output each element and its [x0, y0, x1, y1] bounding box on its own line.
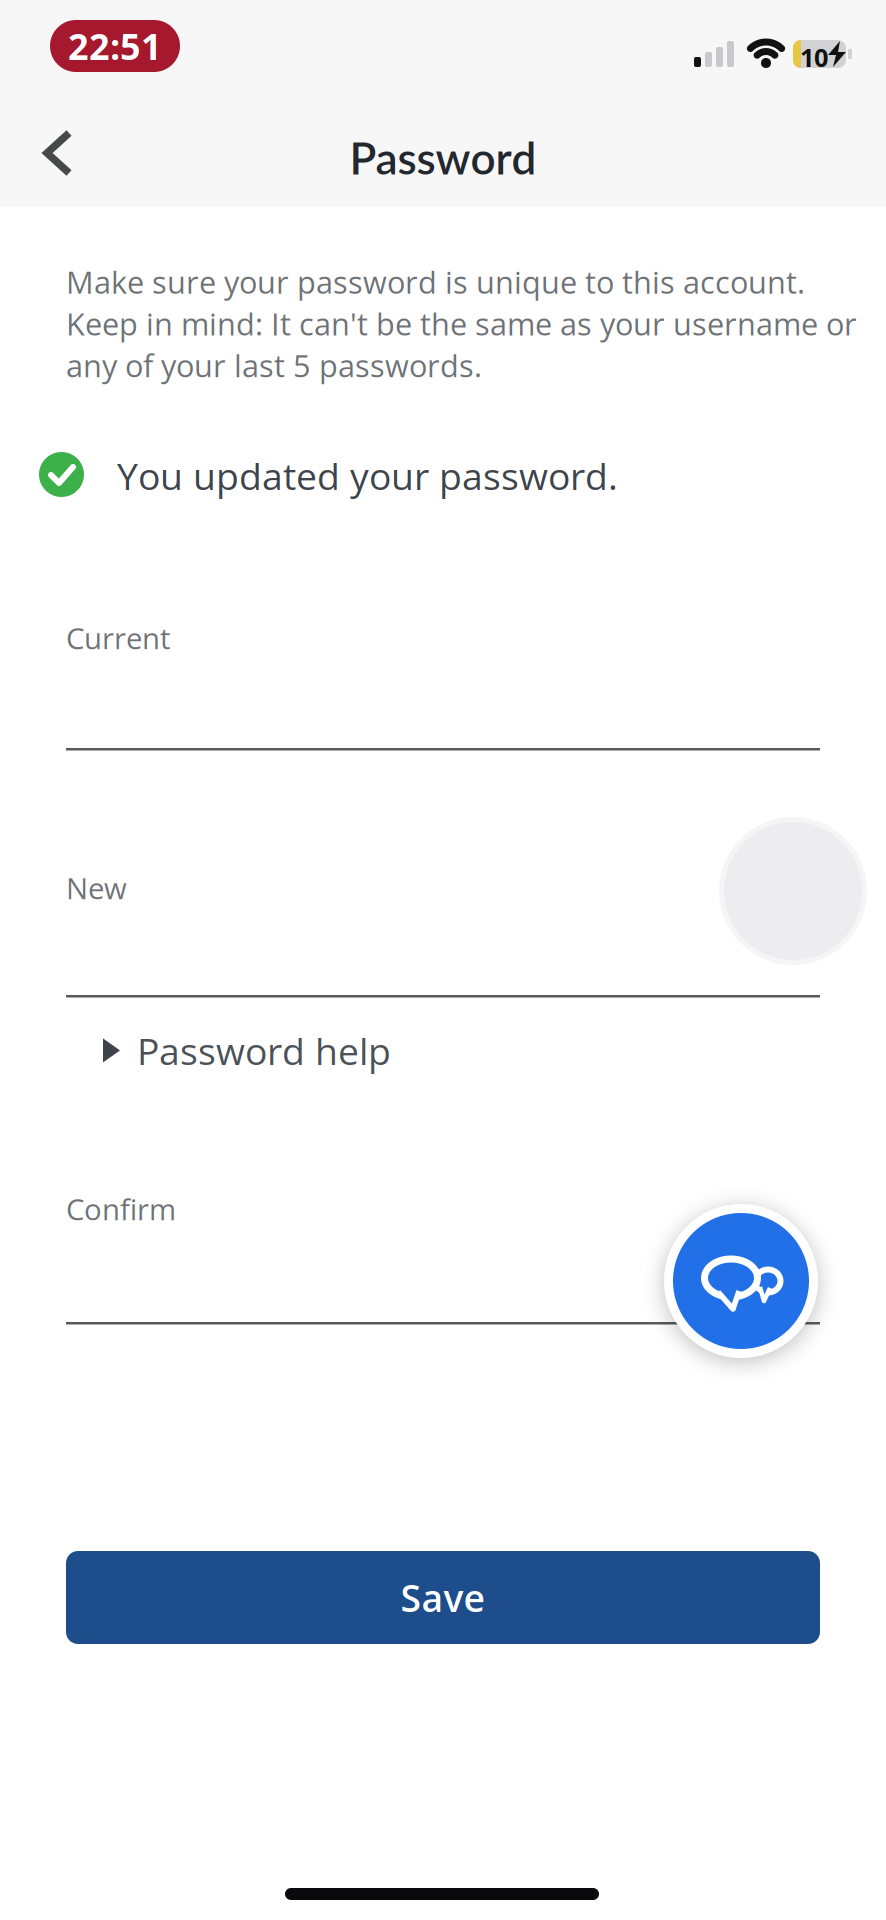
staticText: Confirm [66, 1189, 176, 1229]
staticText: 22:51 [68, 21, 162, 70]
staticText: Save [400, 1572, 485, 1623]
staticText: Keep in mind: It can't be the same as yo… [66, 303, 857, 345]
staticText: Make sure your password is unique to thi… [66, 261, 805, 303]
staticText: 10 [800, 40, 828, 74]
button[interactable]: New password [66, 995, 820, 997]
staticText: Password help [137, 1025, 391, 1076]
button[interactable]: Screen recording [50, 20, 180, 72]
button[interactable]: Password help [103, 1025, 391, 1076]
staticText: Password [349, 131, 536, 184]
staticText: You updated your password. [117, 450, 618, 501]
button[interactable]: Confirm password [66, 1322, 820, 1324]
button[interactable]: Back [40, 128, 90, 178]
button[interactable]: Live chat [664, 1204, 818, 1358]
staticText: any of your last 5 passwords. [66, 344, 482, 386]
staticText: New [66, 868, 127, 908]
staticText: Current [66, 618, 170, 658]
button[interactable]: Save [66, 1551, 820, 1644]
